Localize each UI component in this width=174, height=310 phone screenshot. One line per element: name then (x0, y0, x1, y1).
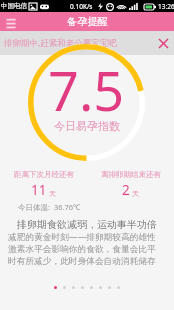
staticText: 7.5 (48, 53, 125, 127)
staticText: 今日易孕指数 (54, 119, 120, 133)
button[interactable] (99, 286, 102, 289)
button[interactable] (108, 286, 111, 289)
staticText: 今日体温: 36.76℃ (18, 202, 81, 212)
staticText: 2 (122, 181, 130, 199)
staticText: 11 (31, 181, 47, 199)
staticText: 离排卵期结束还有 (101, 170, 161, 179)
staticText: 天 (132, 189, 139, 198)
staticText: 13:26 (158, 2, 174, 11)
button[interactable] (63, 286, 66, 289)
staticText: 排卵期中,赶紧和老公要宝宝吧 (4, 37, 117, 49)
button[interactable] (90, 286, 93, 289)
staticText: 排卵期食欲减弱，运动事半功倍 (17, 218, 157, 231)
staticText: 距离下次月经还有 (14, 170, 74, 179)
staticText: 中国电信 (1, 2, 27, 10)
button[interactable]: 距离下次月经还有 (0, 170, 87, 199)
staticText: 备孕提醒 (67, 15, 108, 28)
staticText: 减肥的黄金时刻——排卵期较高的雄性激素水平会影响你的食欲，食量会比平时有所减少，… (8, 231, 158, 267)
button[interactable]: 离排卵期结束还有 (87, 170, 174, 199)
staticText: 0.10K/s (70, 2, 93, 11)
staticText: 天 (49, 189, 56, 198)
button[interactable] (117, 286, 120, 289)
button[interactable]: Close (156, 36, 170, 50)
button[interactable] (81, 286, 84, 289)
button[interactable] (54, 286, 57, 289)
button[interactable] (72, 286, 75, 289)
button[interactable]: Menu (3, 14, 19, 30)
